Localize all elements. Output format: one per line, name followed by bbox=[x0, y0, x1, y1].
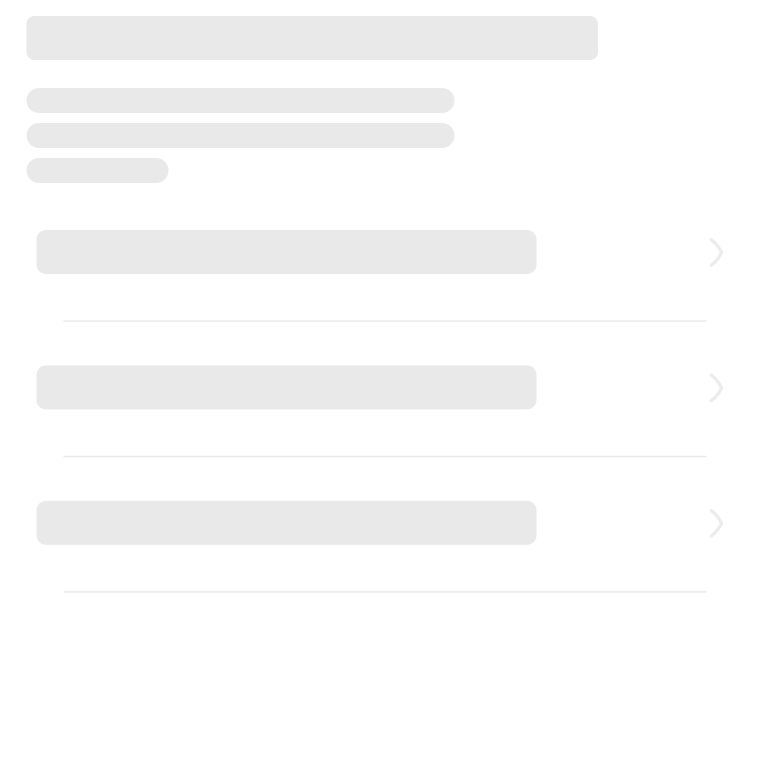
button[interactable]: Loading item bbox=[0, 501, 768, 636]
button[interactable]: Loading item bbox=[0, 365, 768, 501]
button[interactable]: Loading item bbox=[0, 230, 768, 365]
